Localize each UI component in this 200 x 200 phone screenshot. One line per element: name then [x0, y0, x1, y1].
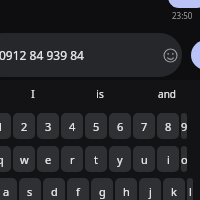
- staticText: and: [158, 87, 176, 101]
- button[interactable]: i: [157, 146, 179, 172]
- staticText: y: [117, 152, 123, 167]
- staticText: 0912 84 939 84: [0, 47, 84, 63]
- staticText: l: [189, 184, 192, 199]
- button[interactable]: h: [115, 178, 137, 200]
- staticText: o: [181, 152, 187, 167]
- button[interactable]: is: [66, 80, 133, 108]
- staticText: 8: [165, 119, 172, 134]
- button[interactable]: 1: [0, 113, 11, 139]
- staticText: 3: [45, 119, 52, 134]
- staticText: s: [27, 184, 33, 199]
- button[interactable]: u: [133, 146, 155, 172]
- button[interactable]: 3: [37, 113, 59, 139]
- button[interactable]: 9: [181, 113, 187, 139]
- button[interactable]: o: [181, 146, 187, 172]
- staticText: q: [0, 152, 4, 167]
- staticText: u: [141, 152, 148, 167]
- button[interactable]: s: [19, 178, 41, 200]
- staticText: h: [123, 184, 130, 199]
- button[interactable]: w: [13, 146, 35, 172]
- staticText: w: [20, 152, 29, 167]
- button[interactable]: and: [133, 80, 200, 108]
- button[interactable]: e: [37, 146, 59, 172]
- staticText: 23:50: [172, 10, 193, 21]
- button[interactable]: Emoji: [163, 48, 178, 63]
- button[interactable]: j: [139, 178, 161, 200]
- staticText: 7: [141, 119, 148, 134]
- button[interactable]: t: [85, 146, 107, 172]
- staticText: f: [76, 184, 80, 199]
- button[interactable]: a: [0, 178, 17, 200]
- staticText: 6: [117, 119, 124, 134]
- button[interactable]: 7: [133, 113, 155, 139]
- button[interactable]: Send: [191, 40, 200, 70]
- button[interactable]: d: [43, 178, 65, 200]
- staticText: i: [167, 152, 170, 167]
- staticText: 9: [181, 119, 187, 134]
- staticText: is: [96, 87, 104, 101]
- button[interactable]: 8: [157, 113, 179, 139]
- button[interactable]: g: [91, 178, 113, 200]
- staticText: 2: [21, 119, 28, 134]
- button[interactable]: 4: [61, 113, 83, 139]
- staticText: k: [171, 184, 177, 199]
- button[interactable]: r: [61, 146, 83, 172]
- button[interactable]: y: [109, 146, 131, 172]
- button[interactable]: 0912 84 939 84: [0, 33, 182, 77]
- staticText: r: [70, 152, 75, 167]
- staticText: 5: [93, 119, 100, 134]
- button[interactable]: [168, 0, 200, 8]
- staticText: 4: [69, 119, 76, 134]
- staticText: e: [45, 152, 52, 167]
- staticText: j: [149, 184, 152, 199]
- button[interactable]: 6: [109, 113, 131, 139]
- staticText: a: [3, 184, 10, 199]
- button[interactable]: 5: [85, 113, 107, 139]
- button[interactable]: l: [187, 178, 193, 200]
- button[interactable]: q: [0, 146, 11, 172]
- staticText: t: [94, 152, 98, 167]
- staticText: I: [31, 87, 35, 101]
- button[interactable]: I: [0, 80, 66, 108]
- staticText: g: [99, 184, 106, 199]
- button[interactable]: f: [67, 178, 89, 200]
- button[interactable]: 2: [13, 113, 35, 139]
- button[interactable]: k: [163, 178, 185, 200]
- staticText: 1: [0, 119, 4, 134]
- staticText: d: [51, 184, 58, 199]
